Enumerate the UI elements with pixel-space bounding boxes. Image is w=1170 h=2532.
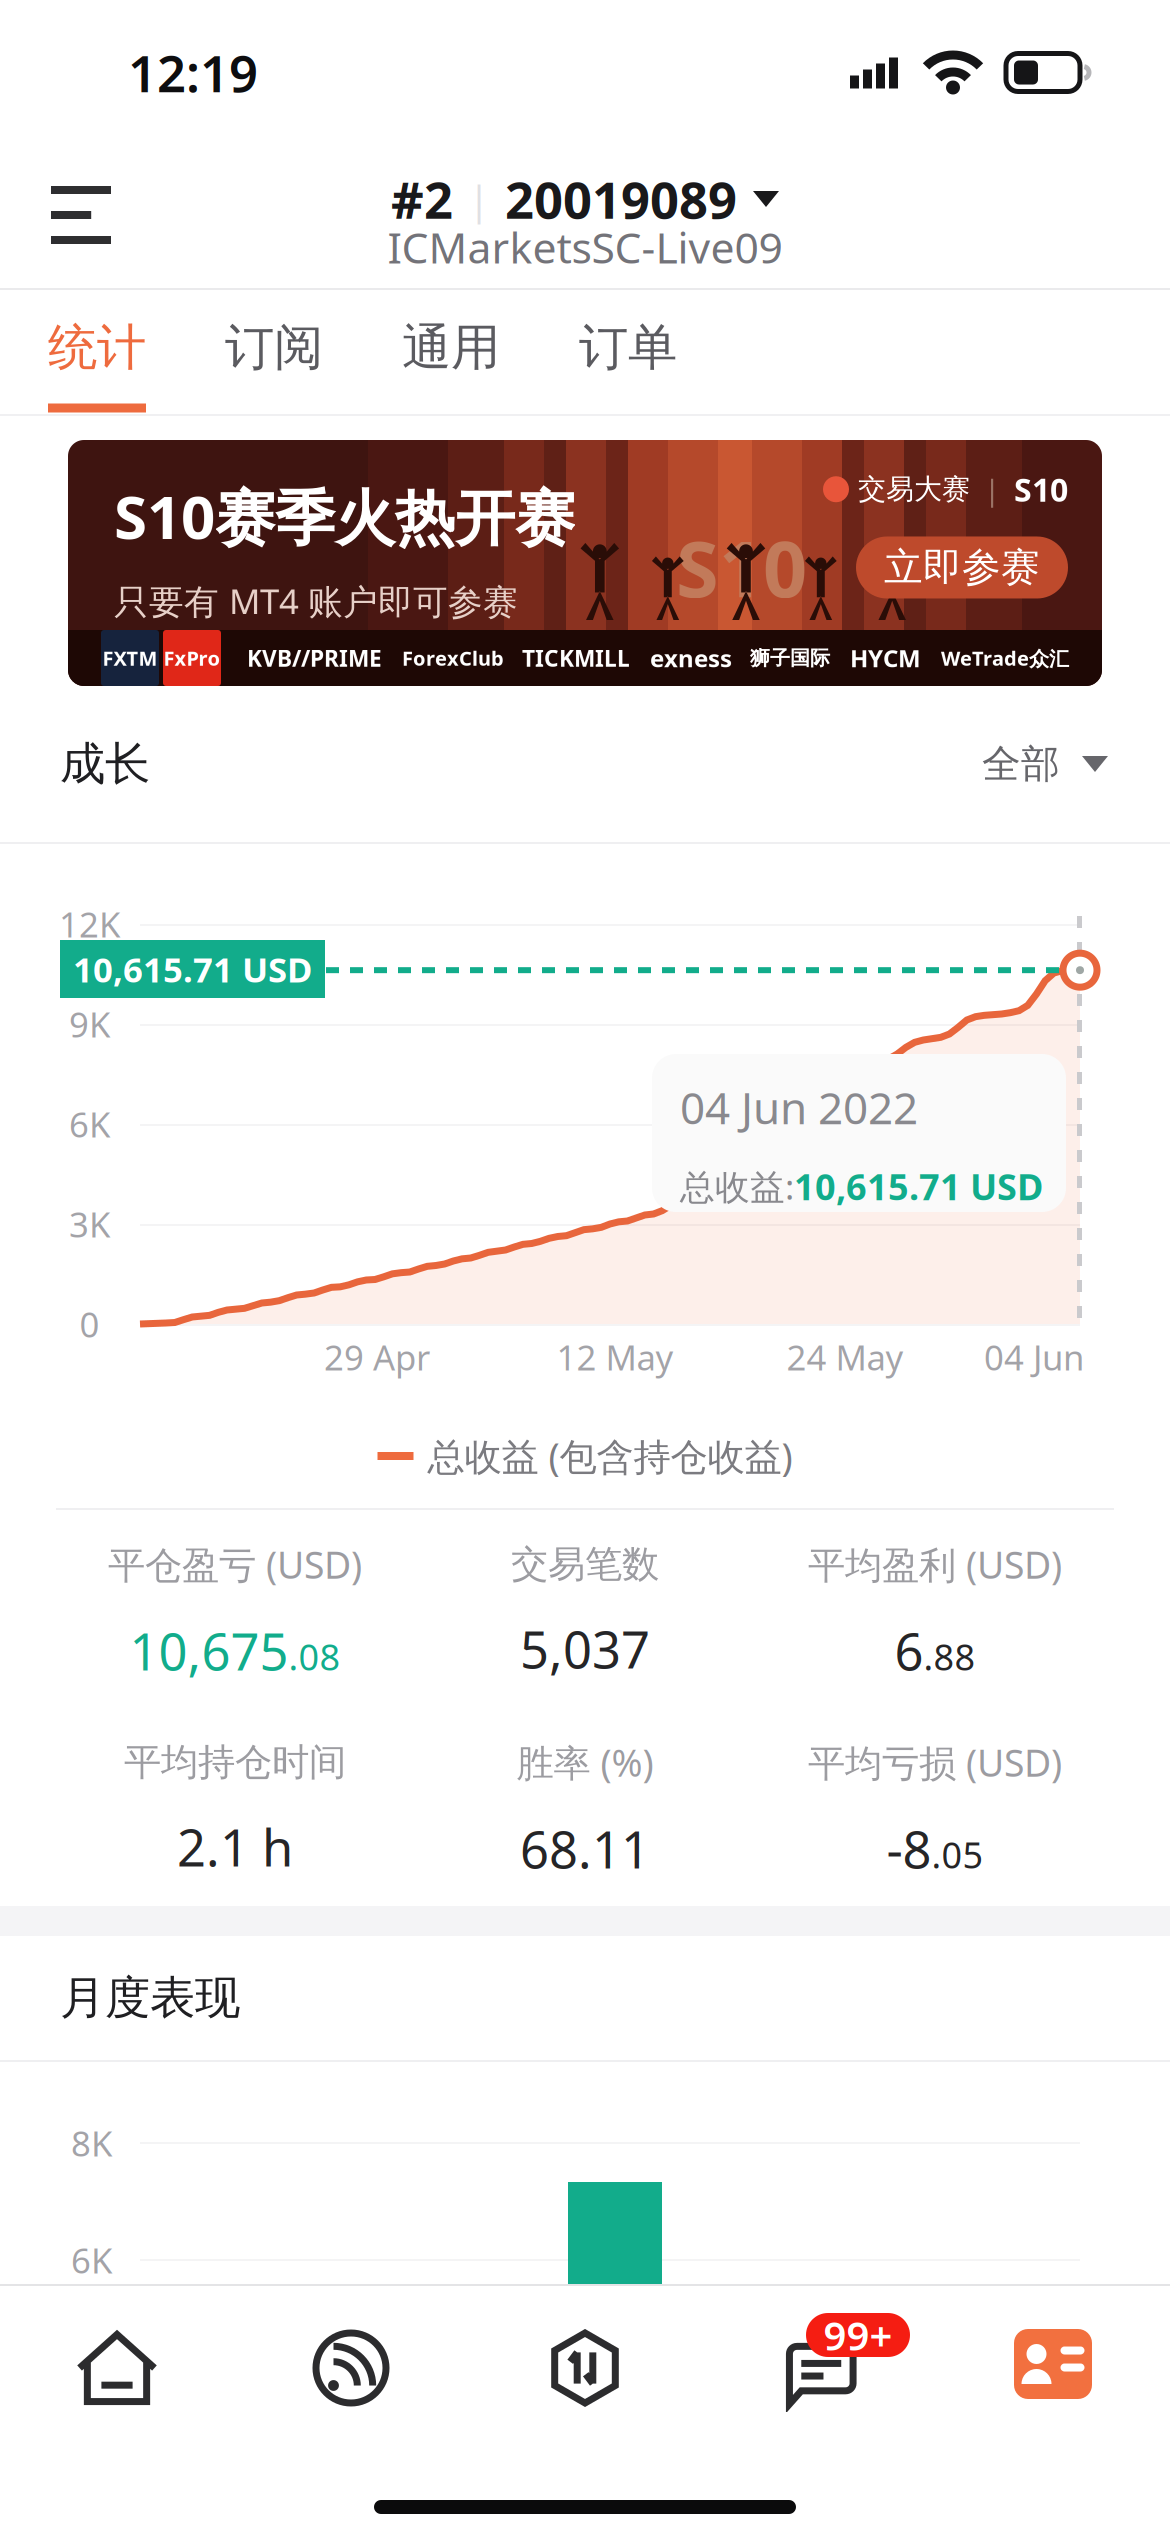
staticText: 平仓盈亏 (USD) — [108, 1540, 362, 1589]
button[interactable]: S10 — [0, 440, 1170, 686]
staticText: ForexClub — [402, 645, 504, 671]
staticText: .08 — [288, 1633, 340, 1680]
staticText: FXTM — [102, 645, 157, 671]
staticText: .88 — [923, 1633, 975, 1680]
staticText: FxPro — [163, 645, 220, 671]
staticText: 9K — [69, 1001, 110, 1047]
staticText: #2 — [391, 165, 453, 233]
button[interactable]: Messages — [702, 2286, 936, 2412]
button[interactable]: Quotes — [234, 2286, 468, 2412]
staticText: 12 May — [556, 1334, 673, 1380]
staticText: 20019089 — [505, 165, 737, 233]
button[interactable]: 通用 — [402, 313, 579, 381]
staticText: WeTrade众汇 — [941, 645, 1069, 671]
staticText: 平均亏损 (USD) — [808, 1738, 1062, 1787]
staticText: 统计 — [48, 317, 146, 378]
staticText: 2.1 h — [177, 1813, 293, 1881]
staticText: 12:19 — [128, 39, 258, 106]
staticText: 狮子国际 — [750, 646, 830, 670]
staticText: 5,037 — [520, 1615, 650, 1683]
staticText: 交易笔数 — [511, 1541, 659, 1587]
button[interactable]: Menu — [0, 145, 153, 288]
staticText: exness — [650, 642, 732, 674]
staticText: 10,615.71 USD — [73, 946, 312, 992]
staticText: 成长 — [60, 736, 150, 792]
staticText: 6K — [71, 2237, 112, 2283]
staticText: ICMarketsSC-Live09 — [387, 219, 782, 275]
staticText: 04 Jun — [984, 1334, 1084, 1380]
staticText: 通用 — [402, 317, 500, 378]
button[interactable]: Profile — [936, 2286, 1170, 2412]
button[interactable]: Home — [0, 2286, 234, 2412]
staticText: .05 — [931, 1831, 983, 1878]
staticText: 29 Apr — [324, 1334, 430, 1380]
button[interactable]: 统计 — [48, 313, 225, 381]
staticText: 6 — [894, 1617, 923, 1684]
staticText: S10 — [1014, 468, 1068, 510]
staticText: 6K — [69, 1101, 110, 1147]
staticText: 24 May — [786, 1334, 903, 1380]
staticText: S10赛季火热开赛 — [114, 476, 575, 556]
staticText: 胜率 (%) — [516, 1738, 653, 1787]
staticText: 立即参赛 — [884, 544, 1040, 591]
staticText: 全部 — [982, 740, 1060, 788]
staticText: 68.11 — [520, 1815, 650, 1882]
staticText: | — [984, 470, 1000, 509]
staticText: | — [468, 172, 490, 225]
button[interactable]: Trade — [468, 2286, 702, 2412]
staticText: 10,675 — [129, 1617, 288, 1684]
staticText: 8K — [71, 2120, 112, 2166]
button[interactable]: 订阅 — [225, 313, 402, 381]
staticText: 月度表现 — [60, 1970, 240, 2026]
staticText: 交易大赛 — [858, 472, 970, 506]
staticText: 10,615.71 USD — [794, 1162, 1043, 1210]
staticText: 总收益: — [680, 1163, 794, 1209]
button[interactable]: #2 — [391, 173, 779, 225]
staticText: -8 — [886, 1815, 931, 1882]
staticText: 总收益 (包含持仓收益) — [427, 1431, 792, 1481]
staticText: 99+ — [823, 2308, 892, 2361]
staticText: 0 — [79, 1301, 99, 1347]
staticText: S10 — [676, 516, 807, 619]
staticText: 04 Jun 2022 — [680, 1078, 918, 1136]
staticText: 订阅 — [225, 317, 323, 378]
staticText: 只要有 MT4 账户即可参赛 — [114, 578, 518, 624]
staticText: 12K — [59, 901, 120, 947]
staticText: HYCM — [850, 642, 921, 674]
staticText: 3K — [69, 1201, 110, 1247]
button[interactable]: 全部 — [982, 740, 1108, 788]
staticText: 平均持仓时间 — [124, 1739, 346, 1785]
button[interactable]: 订单 — [579, 313, 756, 381]
staticText: KVB//PRIME — [247, 643, 382, 673]
staticText: TICKMILL — [522, 643, 630, 673]
staticText: 订单 — [579, 317, 677, 378]
staticText: 平均盈利 (USD) — [808, 1540, 1062, 1589]
